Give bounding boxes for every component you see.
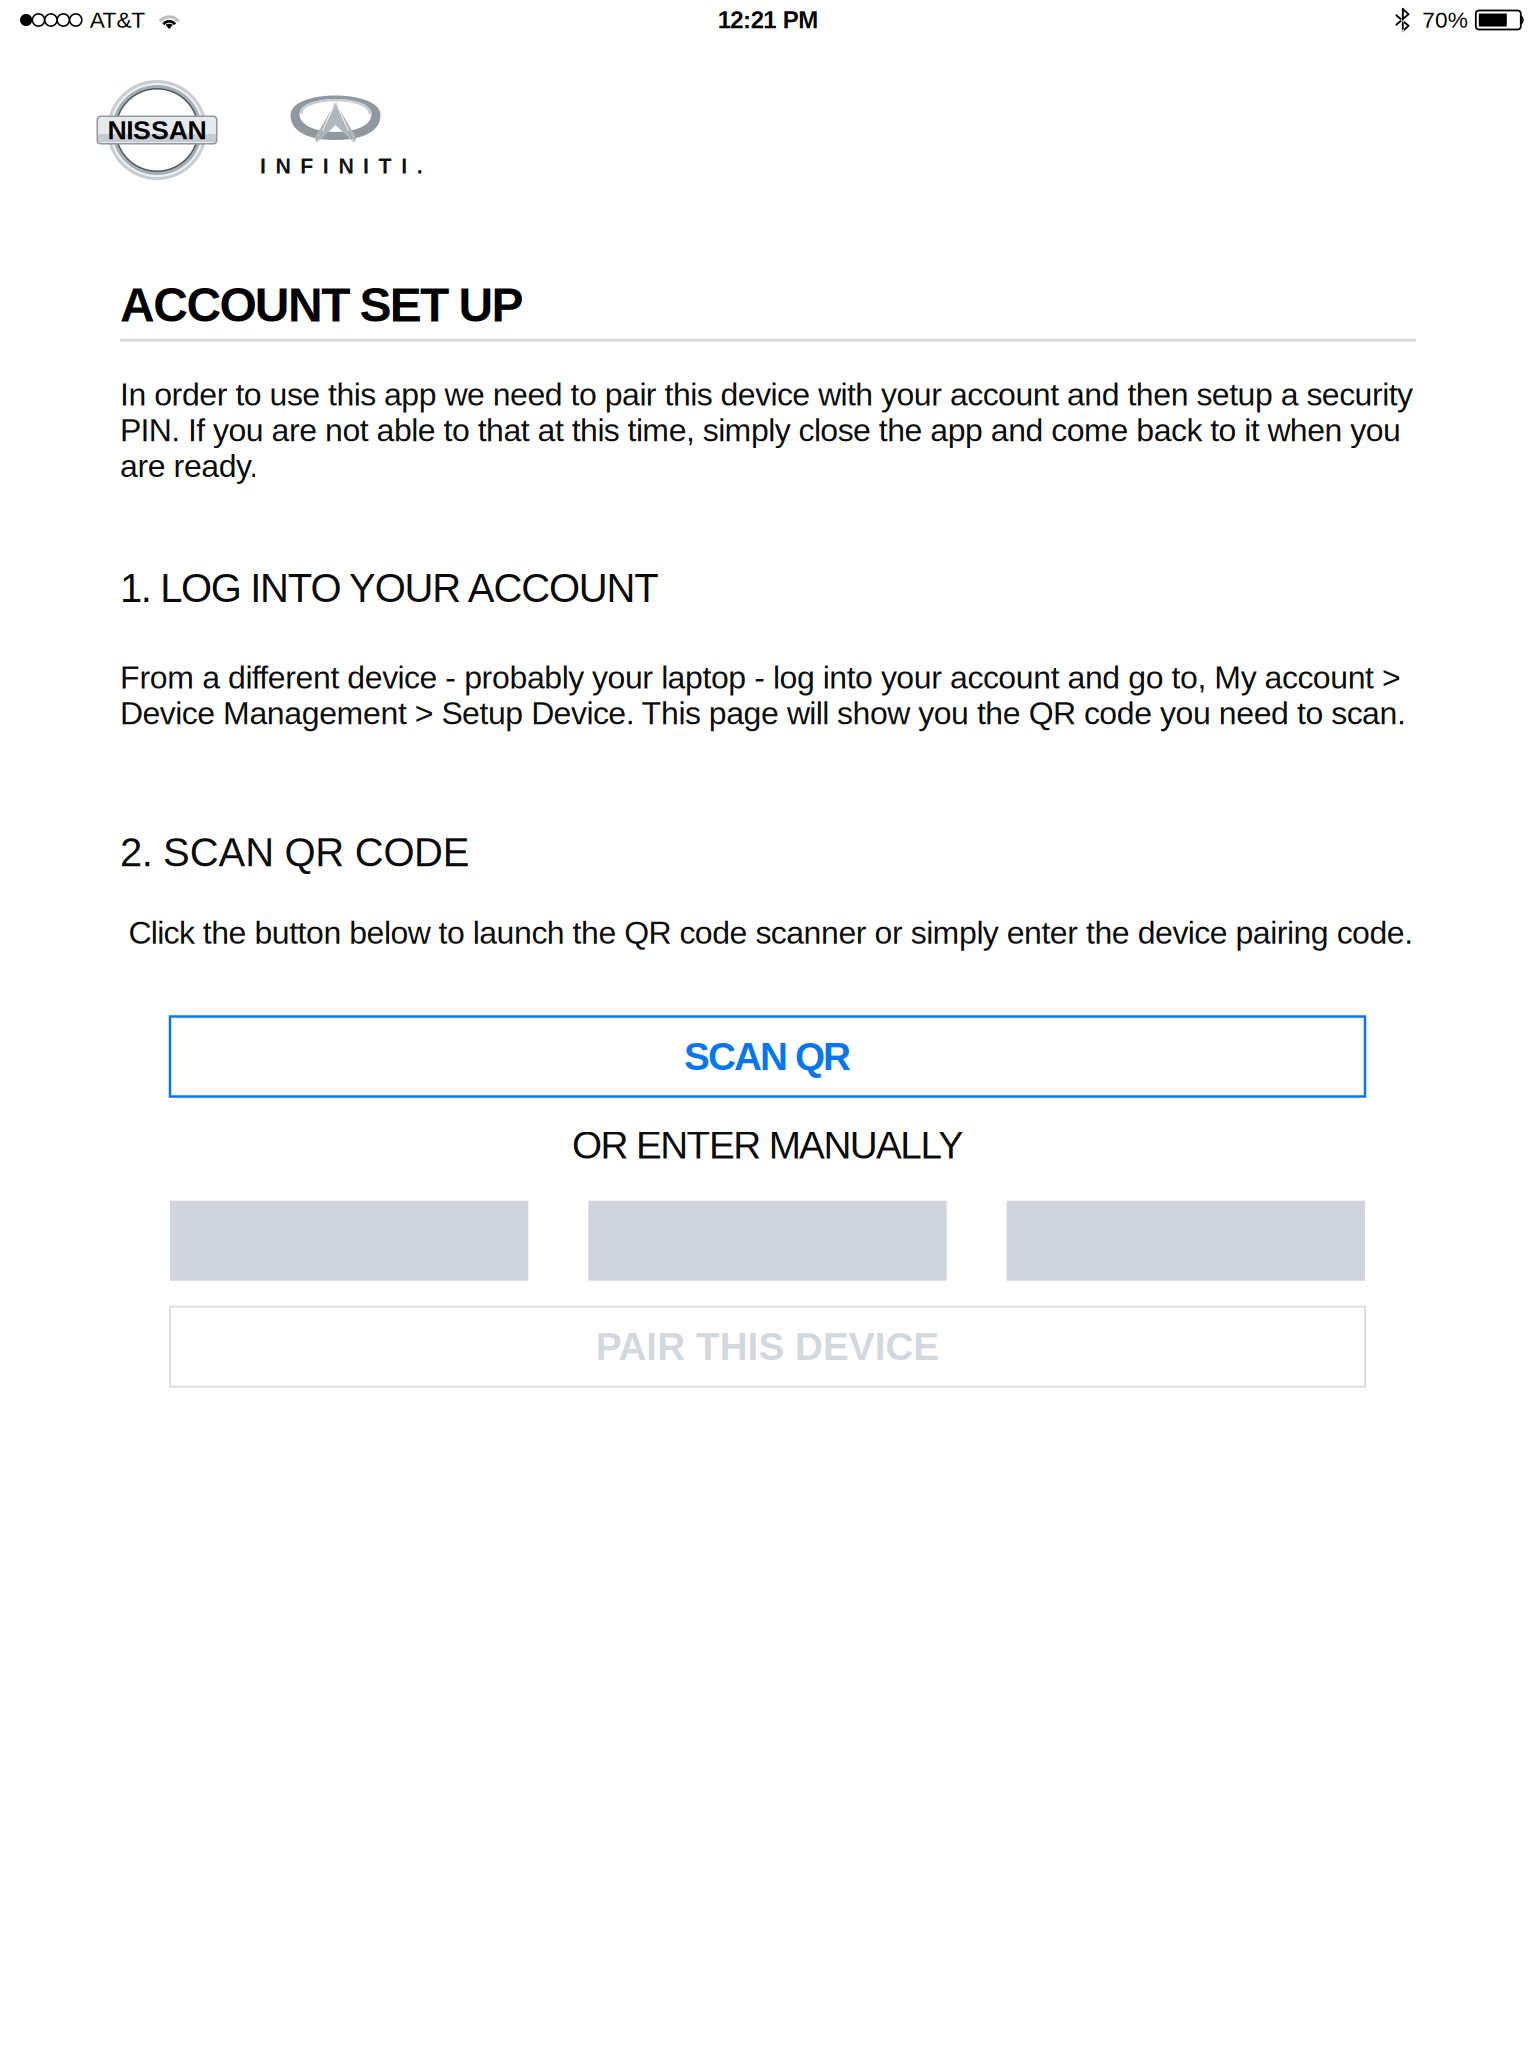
staticText: 12:21 PM	[718, 7, 818, 33]
staticText: I N F I N I T I .	[260, 154, 423, 178]
staticText: ACCOUNT SET UP	[120, 278, 524, 332]
button[interactable]: SCAN QR	[170, 1016, 1365, 1096]
staticText: AT&T	[90, 7, 145, 33]
staticText: OR ENTER MANUALLY	[572, 1123, 964, 1167]
staticText: 70%	[1422, 7, 1468, 33]
button[interactable]: PAIR THIS DEVICE	[170, 1307, 1365, 1387]
staticText: 2. SCAN QR CODE	[120, 830, 470, 875]
staticText: SCAN QR	[684, 1035, 851, 1078]
staticText: NISSAN	[107, 115, 206, 145]
staticText: Click the button below to launch the QR …	[120, 915, 1413, 951]
staticText: In order to use this app we need to pair…	[120, 377, 1413, 484]
staticText: 1. LOG INTO YOUR ACCOUNT	[120, 566, 658, 611]
staticText: PAIR THIS DEVICE	[596, 1325, 939, 1368]
staticText: From a different device - probably your …	[120, 660, 1406, 731]
